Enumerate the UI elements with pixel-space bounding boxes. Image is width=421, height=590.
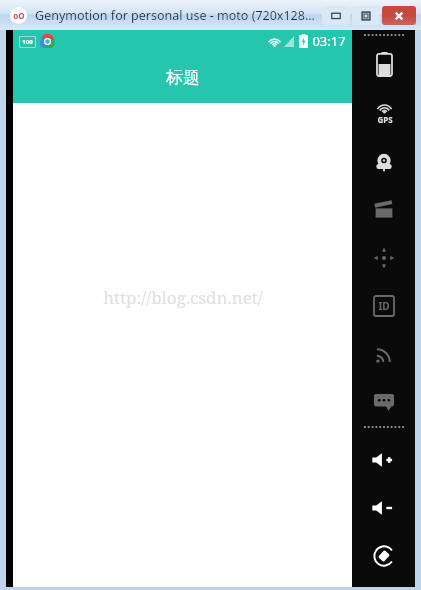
button[interactable]: GPS <box>359 100 409 128</box>
staticText: http://blog.csdn.net/ <box>103 286 263 309</box>
button[interactable]: Camera <box>359 148 409 176</box>
button[interactable]: Rotate <box>359 542 409 570</box>
staticText: ID <box>378 299 390 313</box>
staticText: 03:17 <box>312 32 346 50</box>
button[interactable]: Accelerometer <box>359 244 409 272</box>
staticText: 100 <box>22 38 33 46</box>
button[interactable]: Volume up <box>359 446 409 474</box>
staticText: Genymotion for personal use - moto (720x… <box>35 7 315 24</box>
other: Close <box>392 9 406 23</box>
staticText: GPS <box>377 114 393 125</box>
button[interactable]: Close <box>382 6 416 25</box>
button[interactable]: Minimize <box>322 6 350 25</box>
button[interactable]: Identifiers <box>359 292 409 320</box>
other: Restore <box>359 9 373 23</box>
button[interactable]: Battery <box>359 50 409 78</box>
button[interactable]: Video <box>359 196 409 224</box>
button[interactable]: Network <box>359 340 409 368</box>
staticText: oO <box>13 10 25 21</box>
button[interactable]: Restore <box>352 6 380 25</box>
staticText: 标题 <box>166 67 200 88</box>
other: Minimize <box>329 9 343 23</box>
button[interactable]: SMS <box>359 388 409 416</box>
button[interactable]: Volume down <box>359 494 409 522</box>
